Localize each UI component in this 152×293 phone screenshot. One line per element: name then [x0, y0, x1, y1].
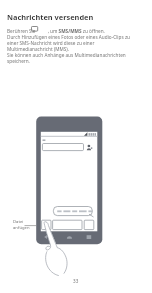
- staticText: Datei anfügen: [13, 219, 30, 230]
- staticText: 33: [73, 278, 79, 284]
- staticText: Berühren Sie , um SMS/MMS zu öffnen. Dur…: [7, 28, 131, 64]
- staticText: Nachrichten versenden: [7, 12, 94, 22]
